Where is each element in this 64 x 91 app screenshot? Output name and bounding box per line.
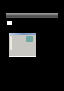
button[interactable]	[6, 13, 58, 18]
